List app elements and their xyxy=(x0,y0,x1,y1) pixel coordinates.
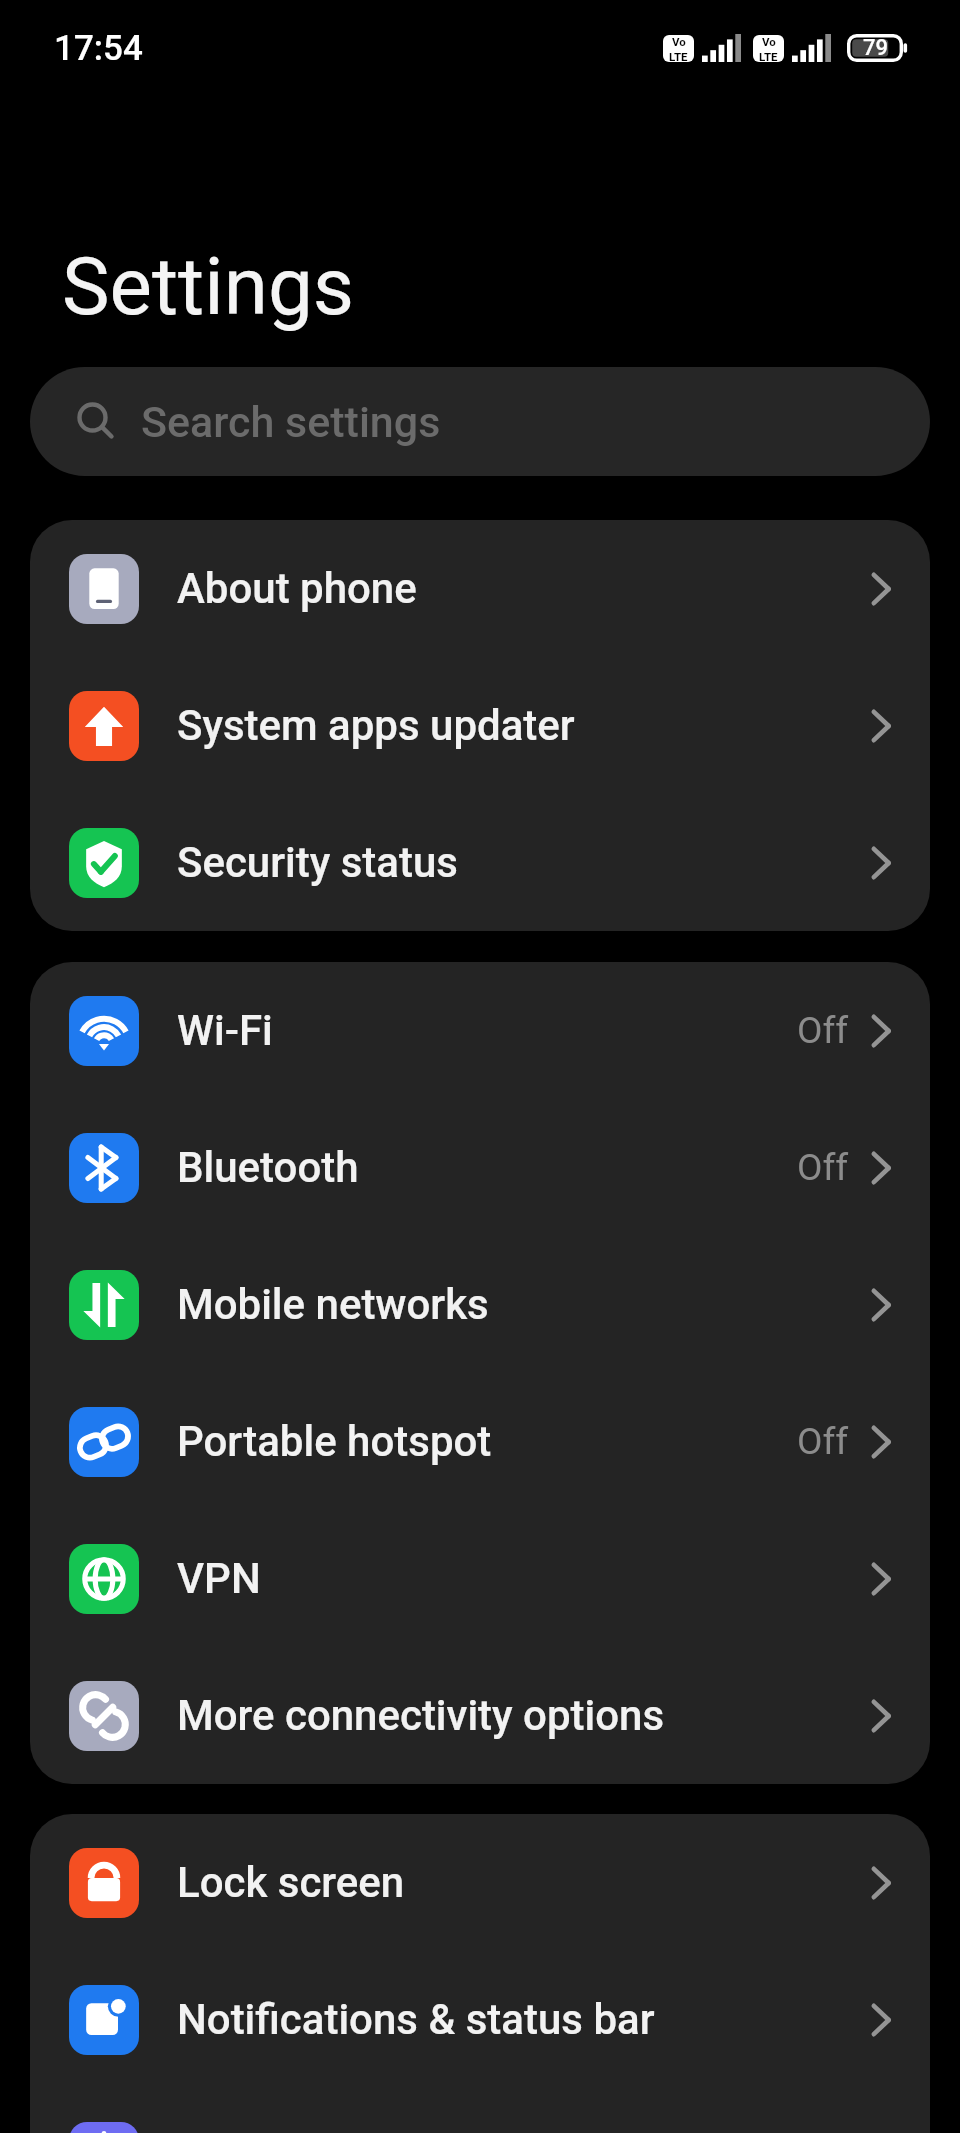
staticText: Off xyxy=(797,1146,849,1189)
button[interactable]: System apps updater xyxy=(30,657,930,794)
staticText: 79 xyxy=(863,35,889,61)
staticText: System apps updater xyxy=(177,701,575,750)
button[interactable]: Lock screen xyxy=(30,1814,930,1951)
button[interactable]: Search settings xyxy=(30,367,930,476)
button[interactable]: Portable hotspot xyxy=(30,1373,930,1510)
button[interactable]: VPN xyxy=(30,1510,930,1647)
staticText: Portable hotspot xyxy=(177,1417,492,1466)
staticText: About phone xyxy=(177,564,417,613)
staticText: Off xyxy=(797,1009,849,1052)
staticText: VPN xyxy=(177,1554,261,1603)
staticText: Bluetooth xyxy=(177,1143,359,1192)
staticText: Settings xyxy=(62,240,355,334)
staticText: Notifications & status bar xyxy=(177,1995,655,2044)
button[interactable]: Wi-Fi xyxy=(30,962,930,1099)
button[interactable]: Display xyxy=(30,2088,930,2133)
button[interactable]: Security status xyxy=(30,794,930,931)
staticText: Off xyxy=(797,1420,849,1463)
staticText: Search settings xyxy=(141,397,441,447)
staticText: Vo xyxy=(762,35,776,48)
button[interactable]: More connectivity options xyxy=(30,1647,930,1784)
staticText: Mobile networks xyxy=(177,1280,489,1329)
staticText: Vo xyxy=(672,35,686,48)
staticText: 17:54 xyxy=(54,28,143,69)
staticText: LTE xyxy=(759,50,778,62)
button[interactable]: Bluetooth xyxy=(30,1099,930,1236)
staticText: LTE xyxy=(669,50,688,62)
button[interactable]: About phone xyxy=(30,520,930,657)
staticText: More connectivity options xyxy=(177,1691,665,1740)
staticText: Wi-Fi xyxy=(177,1006,273,1055)
staticText: Lock screen xyxy=(177,1858,405,1907)
staticText: Security status xyxy=(177,838,458,887)
button[interactable]: Mobile networks xyxy=(30,1236,930,1373)
button[interactable]: Notifications & status bar xyxy=(30,1951,930,2088)
